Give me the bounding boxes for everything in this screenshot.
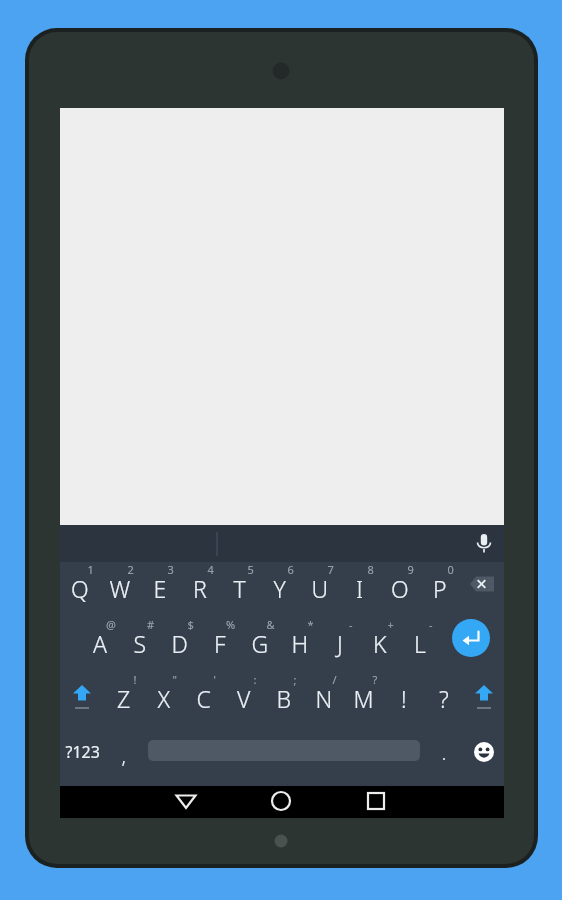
- button[interactable]: B: [264, 674, 304, 722]
- button[interactable]: Home: [245, 786, 317, 818]
- button[interactable]: Q: [60, 564, 100, 612]
- button[interactable]: O: [380, 564, 420, 612]
- button[interactable]: H: [280, 619, 320, 667]
- button[interactable]: J: [320, 619, 360, 667]
- button[interactable]: Y: [260, 564, 300, 612]
- button[interactable]: ?: [424, 674, 464, 722]
- button[interactable]: G: [240, 619, 280, 667]
- button[interactable]: Space: [148, 730, 420, 776]
- button[interactable]: M: [344, 674, 384, 722]
- button[interactable]: U: [300, 564, 340, 612]
- button[interactable]: L: [400, 619, 440, 667]
- button[interactable]: Recents: [340, 786, 412, 818]
- button[interactable]: .: [420, 730, 462, 776]
- button[interactable]: K: [360, 619, 400, 667]
- button[interactable]: ,: [108, 730, 148, 776]
- button[interactable]: T: [220, 564, 260, 612]
- button[interactable]: Back: [150, 786, 222, 818]
- button[interactable]: !: [384, 674, 424, 722]
- button[interactable]: I: [340, 564, 380, 612]
- button[interactable]: X: [144, 674, 184, 722]
- button[interactable]: S: [120, 619, 160, 667]
- button[interactable]: A: [80, 619, 120, 667]
- button[interactable]: C: [184, 674, 224, 722]
- button[interactable]: Shift: [60, 674, 104, 722]
- button[interactable]: Emoji: [462, 730, 504, 776]
- button[interactable]: P: [420, 564, 460, 612]
- button[interactable]: F: [200, 619, 240, 667]
- button[interactable]: Z: [104, 674, 144, 722]
- button[interactable]: Shift: [462, 674, 504, 722]
- button[interactable]: R: [180, 564, 220, 612]
- button[interactable]: W: [100, 564, 140, 612]
- button[interactable]: Voice input: [462, 525, 504, 562]
- button[interactable]: ?123: [60, 730, 108, 776]
- button[interactable]: Backspace: [462, 564, 504, 612]
- button[interactable]: N: [304, 674, 344, 722]
- button[interactable]: V: [224, 674, 264, 722]
- button[interactable]: Enter: [450, 619, 504, 667]
- button[interactable]: D: [160, 619, 200, 667]
- button[interactable]: E: [140, 564, 180, 612]
